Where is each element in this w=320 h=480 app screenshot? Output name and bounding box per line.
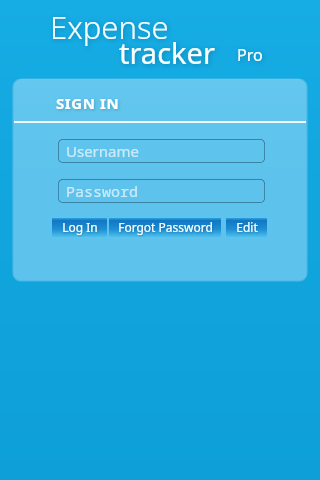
staticText: Log In	[62, 219, 98, 235]
staticText: SIGN IN	[56, 93, 120, 113]
button[interactable]: Log In	[52, 217, 107, 237]
button[interactable]: Edit	[226, 217, 267, 237]
staticText: tracker	[119, 33, 215, 72]
button[interactable]: Forgot Password	[109, 217, 221, 237]
button[interactable]: Password	[58, 179, 265, 203]
staticText: Username	[66, 141, 139, 161]
button[interactable]: Username	[58, 139, 265, 163]
staticText: Edit	[236, 219, 258, 235]
staticText: Password	[66, 181, 139, 201]
staticText: Forgot Password	[118, 219, 213, 235]
staticText: Pro	[237, 44, 263, 66]
staticText: Expense	[50, 6, 169, 48]
